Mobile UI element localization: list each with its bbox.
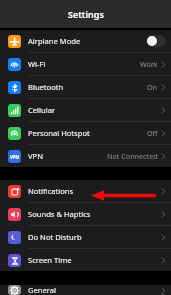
button[interactable]: Screen Time: [0, 249, 171, 271]
staticText: Screen Time: [28, 255, 72, 265]
staticText: On: [147, 82, 158, 92]
button[interactable]: Sounds & Haptics: [0, 203, 171, 225]
button[interactable]: Personal Hotspot: [0, 122, 171, 144]
staticText: General: [28, 285, 56, 295]
staticText: Airplane Mode: [28, 36, 81, 46]
staticText: Settings: [68, 8, 104, 20]
button[interactable]: Airplane Mode: [0, 30, 171, 52]
button[interactable]: Cellular: [0, 99, 171, 121]
staticText: Bluetooth: [28, 82, 64, 92]
staticText: Work: [140, 59, 158, 69]
button[interactable]: Notifications: [0, 180, 171, 202]
button[interactable]: Bluetooth: [0, 76, 171, 98]
staticText: VPN: [10, 154, 19, 160]
button[interactable]: Wi-Fi: [0, 53, 171, 75]
staticText: Not Connected: [107, 151, 158, 161]
staticText: Personal Hotspot: [28, 128, 90, 138]
staticText: Notifications: [28, 186, 74, 196]
staticText: VPN: [28, 151, 43, 161]
button[interactable]: Airplane Mode toggle: [146, 35, 166, 47]
staticText: Off: [147, 128, 158, 138]
button[interactable]: Do Not Disturb: [0, 226, 171, 248]
staticText: Sounds & Haptics: [28, 209, 91, 219]
staticText: Do Not Disturb: [28, 232, 82, 242]
button[interactable]: General: [0, 285, 171, 295]
staticText: Cellular: [28, 105, 56, 115]
staticText: Wi-Fi: [28, 59, 46, 69]
button[interactable]: VPN: [0, 145, 171, 167]
